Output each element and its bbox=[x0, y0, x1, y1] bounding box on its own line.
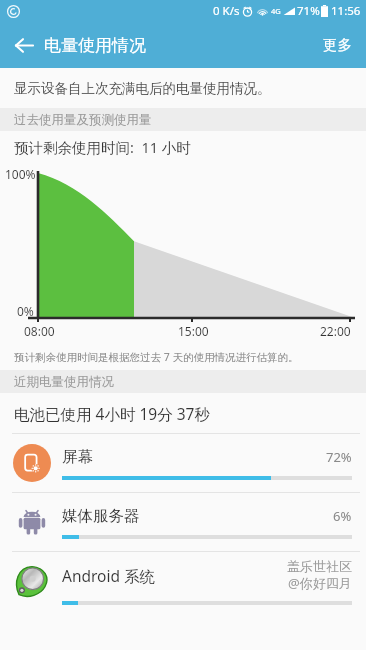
staticText: 更多 bbox=[323, 36, 352, 54]
staticText: 媒体服务器 bbox=[62, 506, 333, 526]
staticText: @你好四月 bbox=[288, 574, 352, 592]
staticText: 22:00 bbox=[320, 323, 351, 339]
staticText: 电池已使用 4小时 19分 37秒 bbox=[14, 403, 210, 424]
staticText: 预计剩余使用时间: 11 小时 bbox=[14, 137, 191, 157]
staticText: 0% bbox=[17, 303, 34, 319]
staticText: 显示设备自上次充满电后的电量使用情况。 bbox=[14, 80, 271, 97]
staticText: 过去使用量及预测使用量 bbox=[14, 112, 152, 128]
staticText: 15:00 bbox=[178, 323, 209, 339]
staticText: 0 K/s bbox=[213, 3, 240, 19]
staticText: 6% bbox=[333, 507, 352, 525]
staticText: 11:56 bbox=[331, 3, 361, 19]
button[interactable]: Android 系统 bbox=[0, 552, 366, 610]
button[interactable]: Back bbox=[6, 27, 42, 63]
staticText: 08:00 bbox=[24, 323, 55, 339]
staticText: 72% bbox=[326, 448, 352, 466]
button[interactable]: 更多 bbox=[309, 22, 366, 68]
staticText: 盖乐世社区 bbox=[287, 558, 352, 574]
button[interactable]: 屏幕 bbox=[0, 434, 366, 492]
staticText: 近期电量使用情况 bbox=[14, 374, 114, 390]
staticText: 预计剩余使用时间是根据您过去 7 天的使用情况进行估算的。 bbox=[14, 350, 299, 364]
staticText: 4G bbox=[271, 6, 281, 16]
staticText: 屏幕 bbox=[62, 447, 326, 467]
button[interactable]: 媒体服务器 bbox=[0, 493, 366, 551]
staticText: Android 系统 bbox=[62, 565, 287, 586]
staticText: 71% bbox=[297, 3, 320, 19]
staticText: 电量使用情况 bbox=[44, 35, 146, 56]
staticText: 100% bbox=[5, 166, 36, 182]
